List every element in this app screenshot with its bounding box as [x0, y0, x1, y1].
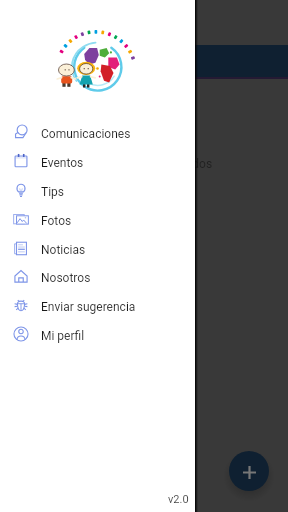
staticText: v2.0 [168, 493, 189, 506]
button[interactable]: Comunicaciones [0, 118, 195, 146]
button[interactable]: Noticias [0, 234, 195, 262]
button[interactable]: Nosotros [0, 262, 195, 290]
staticText: Noticias [41, 243, 86, 257]
staticText: Eventos [41, 156, 84, 170]
button[interactable]: Add [229, 451, 269, 491]
button[interactable]: Tips [0, 176, 195, 204]
staticText: Nosotros [41, 271, 91, 285]
button[interactable]: Fotos [0, 205, 195, 233]
staticText: No hay registros creados [79, 157, 213, 171]
button[interactable]: Eventos [0, 147, 195, 175]
staticText: Fotos [41, 214, 72, 228]
staticText: Tips [41, 185, 65, 199]
staticText: Comunicaciones [41, 127, 131, 141]
staticText: Enviar sugerencia [41, 300, 136, 314]
staticText: Mi perfil [41, 329, 85, 343]
button[interactable]: Enviar sugerencia [0, 291, 195, 319]
button[interactable]: Mi perfil [0, 320, 195, 348]
